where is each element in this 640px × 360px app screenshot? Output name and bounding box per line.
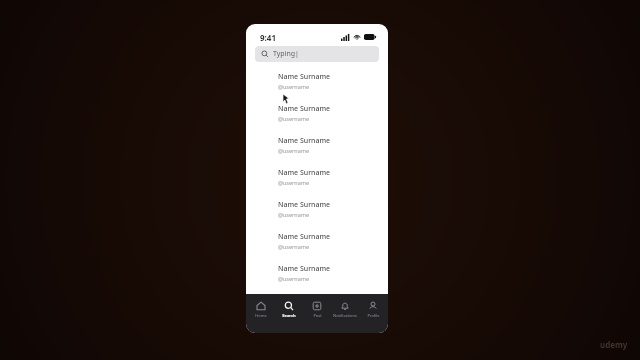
staticText: Profile: [367, 313, 380, 318]
staticText: Typing|: [273, 49, 299, 59]
staticText: @username: [278, 179, 310, 186]
staticText: Name Surname: [278, 232, 331, 242]
staticText: udemy: [600, 339, 628, 350]
staticText: Name Surname: [278, 104, 331, 114]
button[interactable]: Notifications: [332, 294, 358, 318]
staticText: Home: [255, 313, 267, 318]
button[interactable]: Name Surname: [246, 226, 388, 258]
staticText: @username: [278, 275, 310, 282]
staticText: Notifications: [333, 313, 357, 318]
button[interactable]: Name Surname: [246, 66, 388, 98]
button[interactable]: Name Surname: [246, 194, 388, 226]
staticText: Name Surname: [278, 136, 331, 146]
button[interactable]: Post: [304, 294, 330, 318]
button[interactable]: Name Surname: [246, 162, 388, 194]
staticText: 9:41: [260, 32, 276, 43]
staticText: @username: [278, 115, 310, 122]
staticText: @username: [278, 83, 310, 90]
button[interactable]: Typing|: [255, 46, 379, 62]
staticText: Name Surname: [278, 168, 331, 178]
staticText: Search: [282, 313, 296, 318]
staticText: Name Surname: [278, 264, 331, 274]
staticText: Name Surname: [278, 72, 331, 82]
staticText: Name Surname: [278, 200, 331, 210]
button[interactable]: Name Surname: [246, 130, 388, 162]
button[interactable]: Profile: [360, 294, 386, 318]
staticText: @username: [278, 147, 310, 154]
staticText: @username: [278, 243, 310, 250]
staticText: Post: [313, 313, 322, 318]
button[interactable]: Home: [248, 294, 274, 318]
button[interactable]: Search: [276, 294, 302, 318]
button[interactable]: Name Surname: [246, 258, 388, 290]
staticText: @username: [278, 211, 310, 218]
button[interactable]: Name Surname: [246, 98, 388, 130]
